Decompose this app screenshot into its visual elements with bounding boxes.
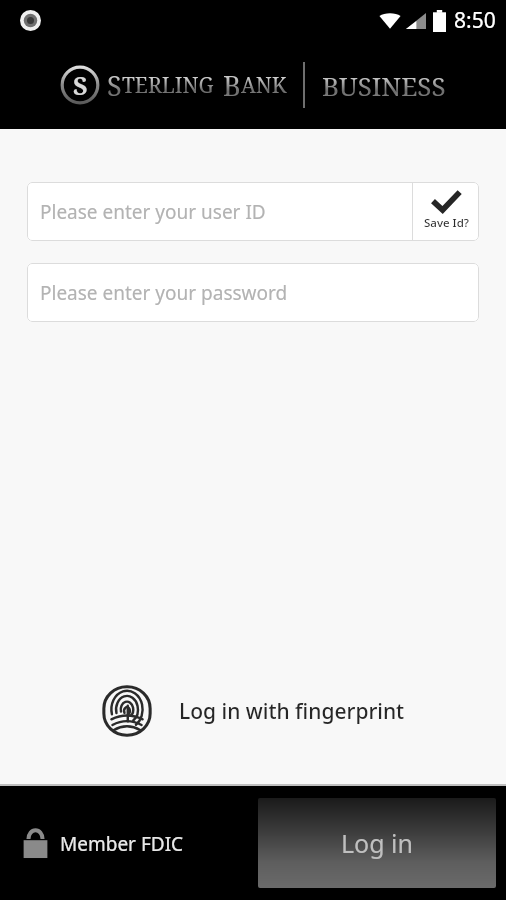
staticText: Please enter your password [40, 280, 288, 306]
staticText: B [223, 67, 241, 104]
staticText: Log in [341, 826, 414, 860]
staticText: Please enter your user ID [40, 199, 266, 225]
staticText: Member FDIC [60, 831, 184, 857]
button[interactable]: Log in [258, 798, 496, 888]
button[interactable]: Member FDIC [0, 817, 206, 870]
staticText: Save Id? [424, 215, 469, 231]
staticText: TERLING [122, 71, 214, 100]
staticText: S [73, 68, 88, 102]
staticText: 8:50 [454, 6, 496, 35]
button[interactable]: Please enter your password [27, 263, 479, 322]
staticText: ANK [241, 71, 287, 100]
staticText: BUSINESS [322, 68, 446, 103]
button[interactable]: Save Id? [413, 182, 479, 241]
staticText: S [107, 67, 122, 104]
button[interactable]: Please enter your user ID [27, 182, 412, 241]
button[interactable]: Log in with fingerprint [83, 675, 423, 747]
staticText: Log in with fingerprint [179, 697, 405, 726]
